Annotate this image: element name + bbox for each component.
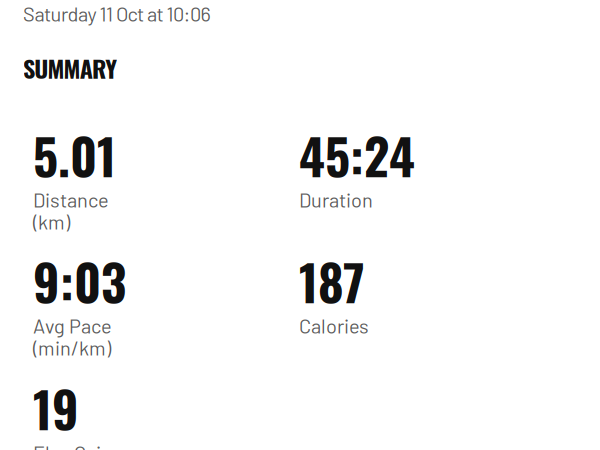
button[interactable]: 187 <box>299 258 565 336</box>
button[interactable]: 45:24 <box>299 132 565 210</box>
staticText: 9:03 <box>33 244 126 317</box>
staticText: (min/km) <box>33 335 111 359</box>
staticText: Avg Pace <box>33 313 112 337</box>
staticText: 187 <box>299 244 365 317</box>
staticText: Distance <box>33 187 109 211</box>
staticText: Saturday 11 Oct at 10:06 <box>23 1 210 25</box>
button[interactable]: 9:03 <box>33 258 299 358</box>
button[interactable]: 5.01 <box>33 132 299 232</box>
staticText: Elev Gain <box>33 440 112 450</box>
staticText: Duration <box>299 187 373 211</box>
button[interactable]: 19 <box>33 385 299 450</box>
staticText: 45:24 <box>299 118 415 191</box>
staticText: Calories <box>299 313 369 337</box>
staticText: SUMMARY <box>23 50 117 86</box>
staticText: 5.01 <box>33 118 116 191</box>
staticText: (km) <box>33 209 70 233</box>
staticText: 19 <box>33 371 79 444</box>
